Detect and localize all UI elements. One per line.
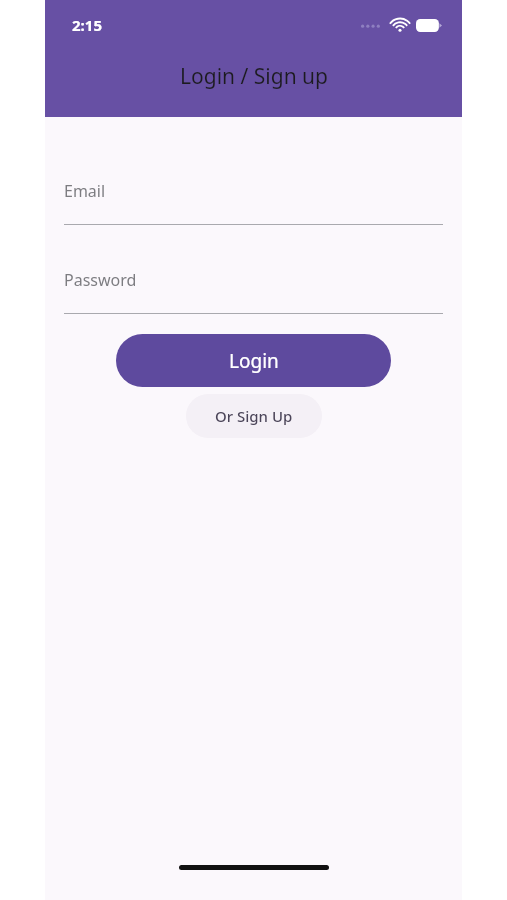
staticText: Email: [64, 180, 106, 202]
staticText: Login: [229, 348, 279, 374]
button[interactable]: Password: [64, 269, 443, 314]
staticText: Login / Sign up: [180, 62, 328, 91]
staticText: 2:15: [72, 15, 102, 35]
staticText: Password: [64, 269, 137, 291]
staticText: Or Sign Up: [215, 406, 293, 426]
button[interactable]: Email: [64, 180, 443, 225]
button[interactable]: Or Sign Up: [186, 394, 322, 438]
button[interactable]: Login: [116, 334, 391, 387]
